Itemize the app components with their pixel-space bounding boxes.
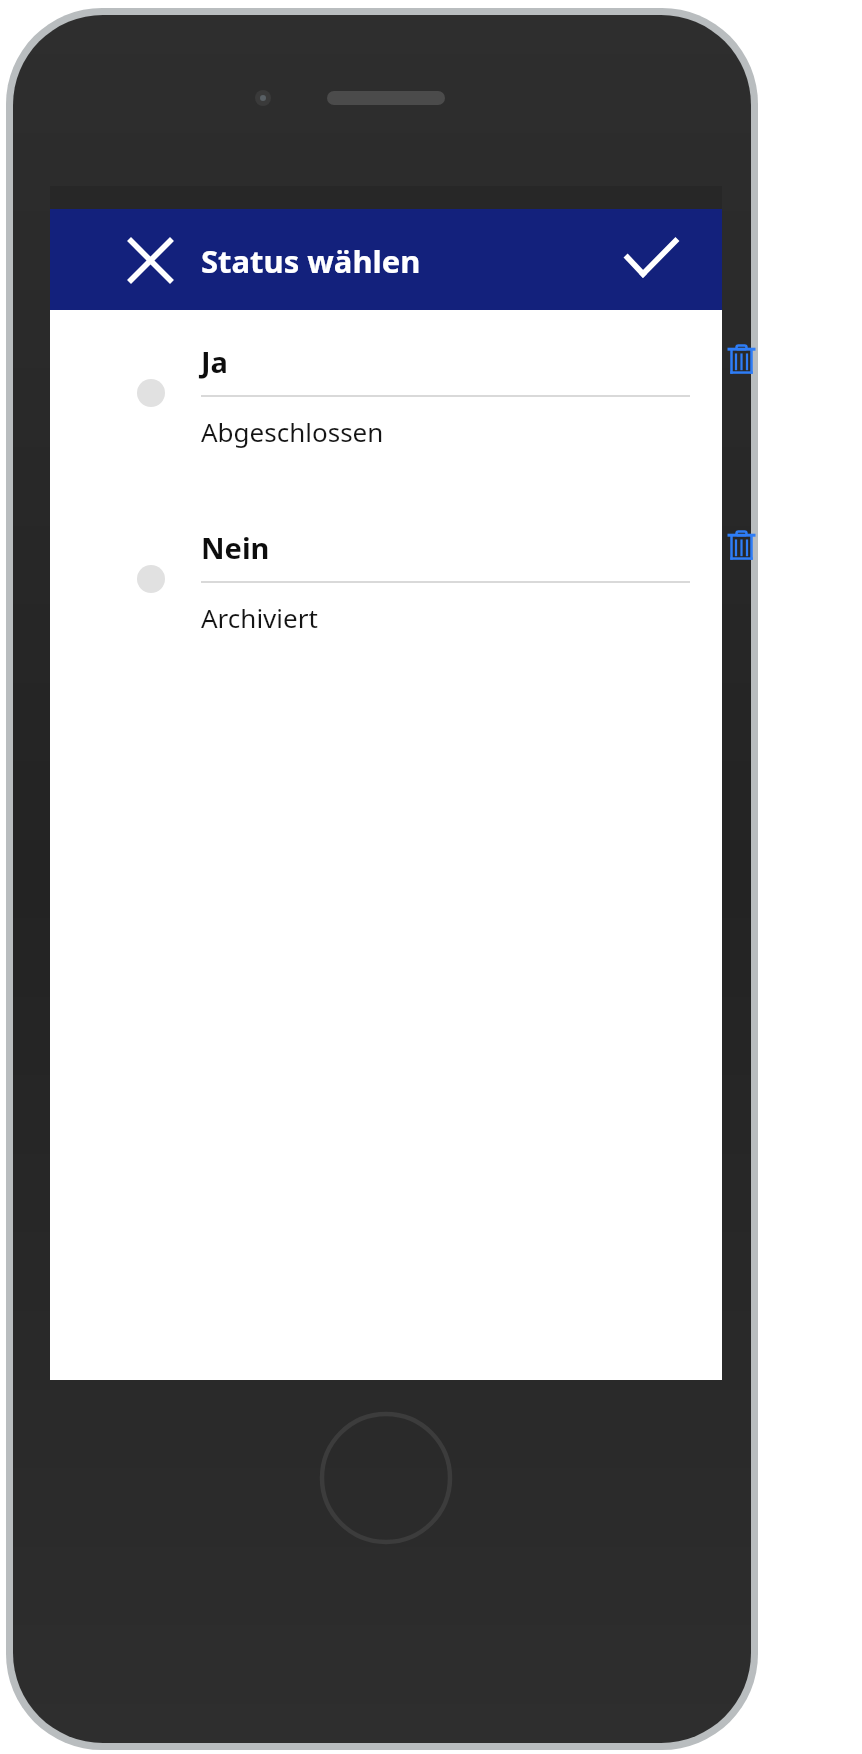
button[interactable]: Ja [50,326,722,460]
button[interactable]: Nein [50,512,722,646]
staticText: Nein [201,528,270,567]
button[interactable]: Schließen [116,226,184,294]
button[interactable]: Bestätigen [614,223,688,297]
button[interactable]: Löschen [712,516,770,574]
staticText: Archiviert [201,600,318,635]
button[interactable]: Löschen [712,330,770,388]
staticText: Abgeschlossen [201,414,384,449]
staticText: Status wählen [201,240,421,282]
staticText: Ja [201,342,228,381]
